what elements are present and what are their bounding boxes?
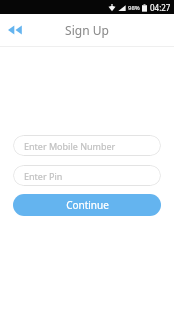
- button[interactable]: Continue: [13, 194, 161, 216]
- staticText: Enter Mobile Number: [24, 140, 116, 152]
- staticText: 04:27: [150, 2, 171, 13]
- staticText: Sign Up: [65, 22, 109, 38]
- button[interactable]: Back: [4, 19, 26, 41]
- staticText: Enter Pin: [24, 170, 63, 182]
- button[interactable]: Enter Mobile Number: [13, 135, 161, 156]
- button[interactable]: Enter Pin: [13, 165, 161, 186]
- staticText: 98%: [128, 4, 140, 12]
- staticText: Continue: [66, 198, 109, 212]
